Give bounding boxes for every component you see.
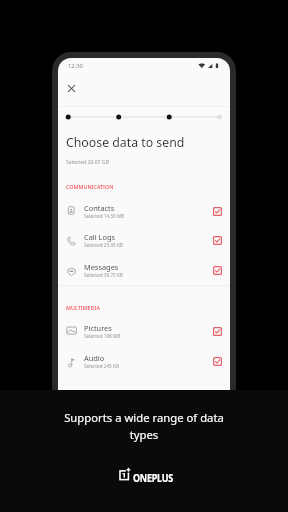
button[interactable]: Contacts bbox=[58, 199, 230, 228]
staticText: Selected 20.07 GB bbox=[66, 159, 109, 166]
staticText: Audio bbox=[84, 353, 105, 363]
staticText: Call Logs bbox=[84, 232, 115, 242]
staticText: Pictures bbox=[84, 323, 112, 333]
staticText: Selected 39.75 KB bbox=[84, 272, 123, 278]
button[interactable]: Audio bbox=[58, 349, 230, 378]
button[interactable]: Close bbox=[60, 77, 83, 100]
staticText: Selected 25.05 KB bbox=[84, 242, 123, 248]
staticText: Messages bbox=[84, 262, 119, 272]
staticText: Choose data to send bbox=[66, 134, 185, 151]
staticText: Selected 245 KB bbox=[84, 363, 119, 369]
staticText: 12:30 bbox=[68, 62, 83, 70]
staticText: Selected 14.50 MB bbox=[84, 213, 125, 219]
staticText: MULTIMEDIA bbox=[66, 304, 100, 311]
staticText: Contacts bbox=[84, 203, 115, 213]
staticText: Selected 108 MB bbox=[84, 333, 121, 339]
button[interactable]: Pictures bbox=[58, 319, 230, 348]
button[interactable]: Call Logs bbox=[58, 228, 230, 257]
staticText: ONEPLUS bbox=[133, 471, 174, 485]
staticText: Supports a wide range of data types bbox=[61, 410, 227, 442]
button[interactable]: Messages bbox=[58, 258, 230, 287]
staticText: COMMUNICATION bbox=[66, 183, 114, 190]
